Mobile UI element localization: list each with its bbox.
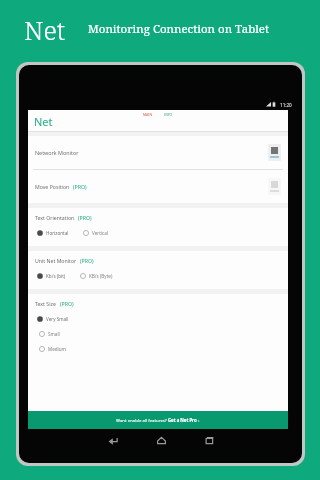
staticText: Want enable all features? [116, 417, 168, 423]
button[interactable]: Vertical [81, 228, 110, 238]
staticText: (PRO) [78, 214, 92, 221]
button[interactable]: Want enable all features? [28, 411, 288, 429]
button[interactable]: Back [100, 429, 126, 451]
button[interactable]: Network Monitor on [268, 144, 281, 161]
staticText: Unit Net Monitor [35, 257, 78, 264]
staticText: Monitoring Connection on Tablet [88, 21, 270, 37]
button[interactable]: KB/s (Byte) [78, 271, 115, 281]
staticText: Get a Net Pro [168, 417, 197, 423]
button[interactable]: Kb/s (bit) [35, 271, 68, 281]
staticText: KB/s (Byte) [89, 273, 113, 279]
button[interactable]: Recent apps [196, 429, 222, 451]
button[interactable]: Small [37, 329, 62, 339]
staticText: (PRO) [73, 183, 87, 190]
staticText: Net [34, 114, 53, 129]
button[interactable]: Text Orientation [28, 208, 288, 246]
staticText: 11:20 [280, 102, 292, 108]
button[interactable]: INFO [161, 111, 176, 118]
button[interactable]: Text Size [28, 294, 288, 411]
staticText: Net [24, 12, 66, 47]
staticText: Kb/s (bit) [46, 273, 66, 279]
staticText: Move Position [35, 183, 71, 190]
staticText: Medium [48, 346, 66, 352]
staticText: MAIN [143, 112, 152, 117]
staticText: › [197, 417, 200, 423]
staticText: Text Size [35, 300, 58, 307]
button[interactable]: MAIN [140, 111, 155, 118]
staticText: INFO [164, 112, 173, 117]
staticText: Small [48, 331, 60, 337]
button[interactable]: Move Position off [268, 178, 281, 195]
button[interactable]: Unit Net Monitor [28, 251, 288, 289]
staticText: (PRO) [60, 300, 74, 307]
button[interactable]: Network Monitor [28, 136, 288, 169]
button[interactable]: Home [148, 429, 174, 451]
button[interactable]: Horizontal [35, 228, 71, 238]
staticText: Horizontal [46, 230, 69, 236]
button[interactable]: Medium [37, 344, 68, 354]
button[interactable]: Very Small [35, 314, 71, 324]
staticText: (PRO) [80, 257, 94, 264]
staticText: Very Small [46, 316, 69, 322]
staticText: Network Monitor [35, 149, 79, 156]
staticText: Text Orientation [35, 214, 76, 221]
button[interactable]: Move Position [28, 170, 288, 203]
staticText: Vertical [92, 230, 108, 236]
